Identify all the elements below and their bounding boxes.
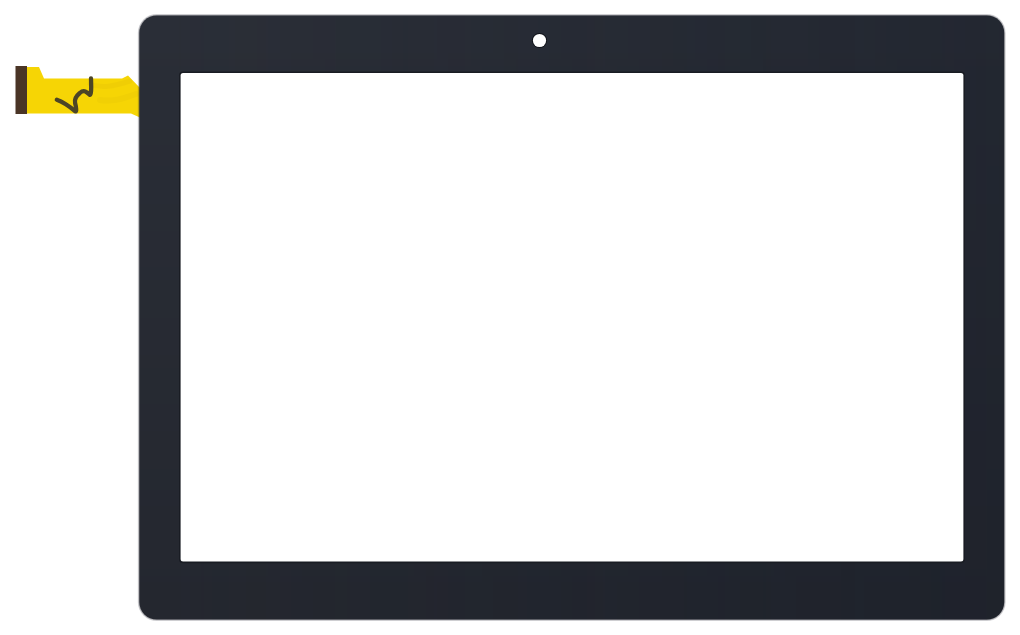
other: Tablet touch screen digitizer glass pane… <box>0 0 1020 635</box>
